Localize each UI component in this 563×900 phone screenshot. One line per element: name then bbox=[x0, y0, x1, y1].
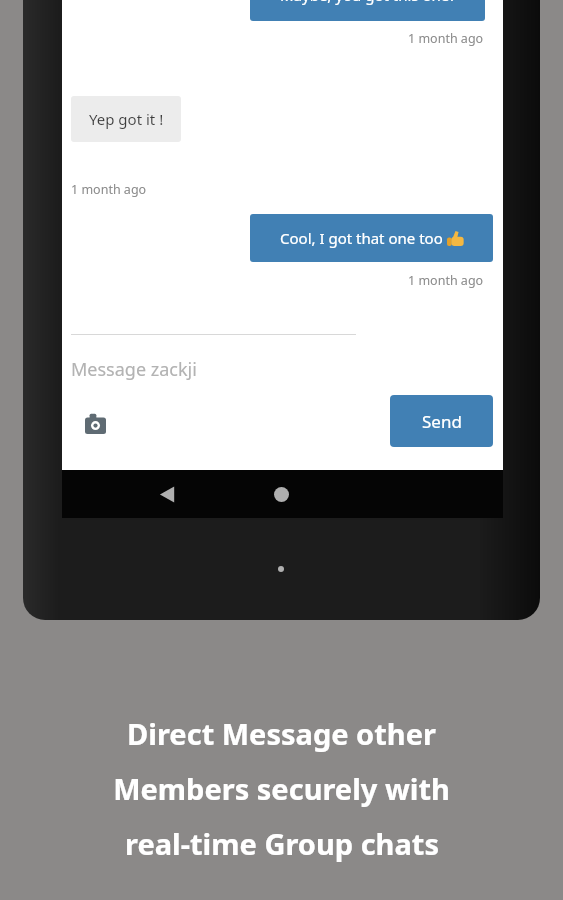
staticText: Yep got it ! bbox=[89, 109, 164, 129]
staticText: 1 month ago bbox=[408, 30, 484, 47]
button[interactable]: Send bbox=[390, 395, 493, 447]
staticText: 1 month ago bbox=[71, 181, 147, 198]
staticText: Members securely with bbox=[113, 769, 450, 808]
button[interactable]: Cool, I got that one too bbox=[250, 214, 493, 262]
button[interactable]: Yep got it ! bbox=[71, 96, 181, 142]
staticText: 1 month ago bbox=[408, 272, 484, 289]
button[interactable]: Home bbox=[243, 470, 319, 518]
button[interactable]: Attach photo bbox=[76, 404, 114, 442]
staticText: real-time Group chats bbox=[125, 824, 439, 863]
button[interactable]: Maybe, you got this one? bbox=[250, 0, 485, 21]
staticText: Send bbox=[422, 410, 462, 433]
button[interactable]: Back bbox=[130, 470, 206, 518]
staticText: Message zackji bbox=[71, 357, 197, 382]
button[interactable]: Message zackji bbox=[71, 352, 371, 386]
staticText: Maybe, you got this one? bbox=[280, 0, 456, 5]
staticText: Cool, I got that one too bbox=[280, 228, 447, 248]
staticText: Direct Message other bbox=[127, 714, 436, 753]
